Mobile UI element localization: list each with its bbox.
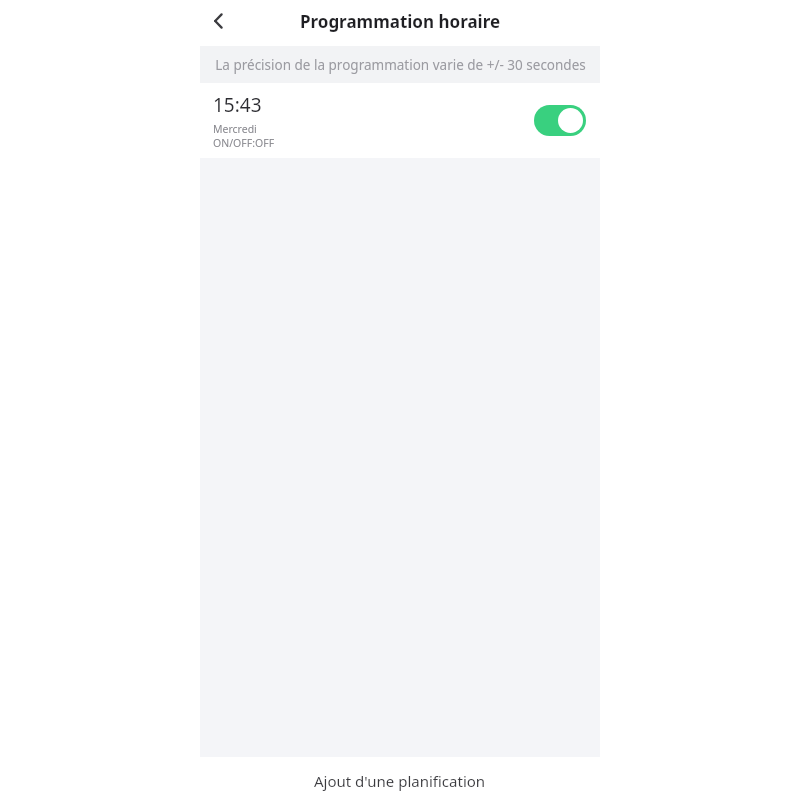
staticText: Ajout d'une planification [314,771,486,791]
button[interactable]: Toggle schedule [534,105,586,136]
staticText: Mercredi [213,122,257,136]
button[interactable]: Back [199,1,239,41]
staticText: ON/OFF:OFF [213,136,275,150]
button[interactable]: 15:43 [200,83,600,158]
button[interactable]: Ajout d'une planification [0,757,800,800]
staticText: La précision de la programmation varie d… [215,56,586,74]
staticText: 15:43 [213,92,262,118]
staticText: Programmation horaire [0,10,800,33]
